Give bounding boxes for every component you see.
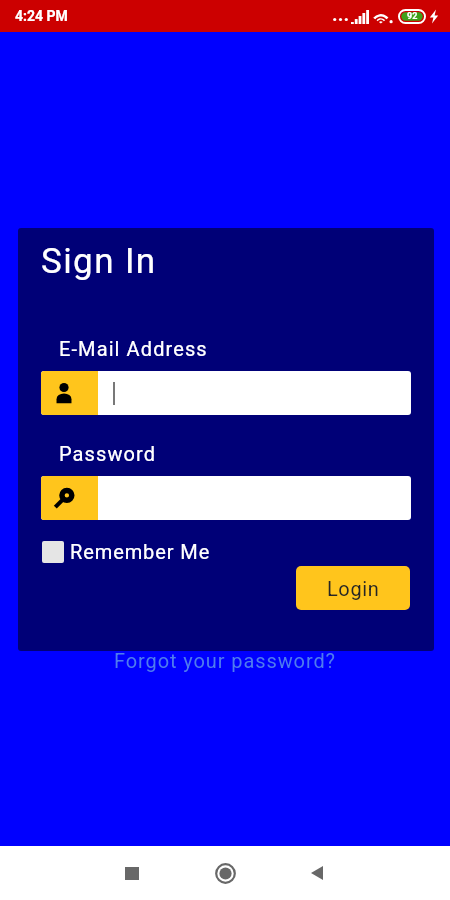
staticText: Remember Me — [70, 540, 211, 563]
button[interactable]: Remember Me — [42, 540, 215, 563]
button[interactable] — [41, 371, 411, 415]
staticText: Login — [327, 577, 380, 600]
button[interactable]: Back — [293, 849, 341, 897]
button[interactable] — [41, 476, 411, 520]
staticText: Forgot your password? — [114, 649, 336, 672]
staticText: 4:24 PM — [15, 8, 68, 24]
button[interactable]: Recent apps — [108, 849, 156, 897]
button[interactable]: Login — [296, 566, 410, 610]
staticText: E-Mail Address — [59, 337, 208, 360]
staticText: Password — [59, 442, 157, 465]
button[interactable]: Home — [201, 849, 249, 897]
staticText: 92 — [407, 11, 418, 22]
button[interactable]: Forgot your password? — [0, 645, 450, 675]
staticText: Sign In — [41, 241, 157, 282]
